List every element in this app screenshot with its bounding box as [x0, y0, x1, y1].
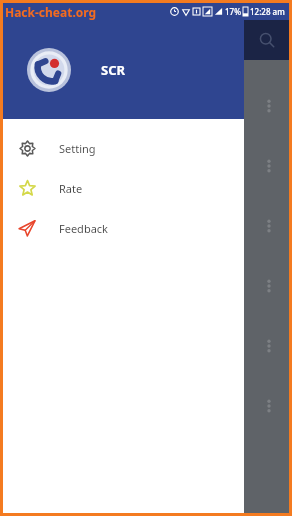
staticText: Setting: [59, 141, 96, 156]
button[interactable]: Setting: [3, 128, 244, 168]
button[interactable]: Feedback: [3, 208, 244, 248]
staticText: SCR: [101, 61, 126, 79]
staticText: 12:28 am: [250, 6, 285, 17]
staticText: 17%: [225, 6, 241, 17]
staticText: Rate: [59, 181, 83, 196]
staticText: Feedback: [59, 221, 108, 236]
button[interactable]: Rate: [3, 168, 244, 208]
button[interactable]: Search: [253, 26, 281, 54]
staticText: Hack-cheat.org: [5, 4, 97, 20]
